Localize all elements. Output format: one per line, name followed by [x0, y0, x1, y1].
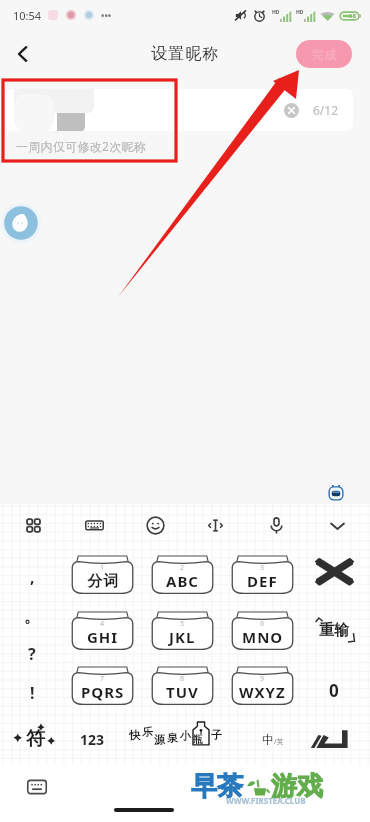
staticText: 子 [211, 728, 222, 742]
staticText: 源 [154, 733, 165, 747]
staticText: 。 [24, 607, 40, 627]
button[interactable]: 中 [248, 719, 298, 759]
button[interactable]: Clear text [281, 100, 301, 120]
staticText: 完成 [311, 47, 337, 62]
staticText: 4 [100, 619, 105, 629]
staticText: JKL [169, 627, 196, 647]
staticText: ! [30, 682, 35, 704]
button[interactable]: 8 [151, 665, 214, 705]
button[interactable]: , [10, 562, 54, 592]
staticText: 一周内仅可修改2次昵称 [16, 138, 147, 154]
staticText: 早茶 [191, 770, 243, 803]
button[interactable]: 3 [231, 554, 294, 594]
staticText: 乐 [142, 725, 153, 739]
staticText: 2 [180, 563, 185, 573]
button[interactable]: 。 [10, 602, 54, 632]
staticText: DEF [247, 571, 278, 591]
staticText: ? [28, 643, 36, 665]
staticText: 5 [180, 619, 185, 629]
staticText: 8 [180, 674, 185, 684]
staticText: ••• [101, 9, 112, 21]
staticText: GHI [87, 627, 119, 647]
button[interactable]: 123 [66, 719, 118, 759]
button[interactable]: Apps [18, 510, 48, 540]
button[interactable]: Cursor control [200, 510, 230, 540]
button[interactable]: 1 [71, 554, 134, 594]
button[interactable]: 6 [231, 610, 294, 650]
staticText: PQRS [81, 682, 125, 702]
button[interactable]: Delete [314, 551, 354, 591]
button[interactable]: Customer service [1, 203, 41, 243]
button[interactable]: Emoji [140, 510, 170, 540]
staticText: WXYZ [239, 682, 286, 702]
staticText: HD [272, 9, 280, 16]
button[interactable]: Input method [326, 483, 346, 503]
button[interactable]: 7 [71, 665, 134, 705]
button[interactable]: ? [10, 639, 54, 669]
staticText: 6/12 [313, 102, 339, 118]
button[interactable]: Clear text [5, 89, 353, 131]
staticText: 10:54 [13, 8, 42, 23]
staticText: HD [296, 9, 304, 16]
button[interactable]: 完成 [296, 40, 352, 68]
staticText: 0 [329, 679, 339, 702]
staticText: 符 [26, 727, 45, 751]
staticText: 68 [349, 12, 356, 20]
staticText: WWW.FIRSTEA.CLUB [226, 795, 306, 806]
staticText: 设置昵称 [151, 44, 220, 64]
staticText: 1 [100, 563, 105, 573]
staticText: TUV [166, 682, 199, 702]
button[interactable]: 2 [151, 554, 214, 594]
button[interactable]: 9 [231, 665, 294, 705]
staticText: 9 [260, 674, 265, 684]
staticText: 瓶 [193, 733, 203, 746]
staticText: 分词 [87, 572, 119, 591]
button[interactable]: Keyboard layout [79, 510, 109, 540]
button[interactable]: 符 [7, 717, 63, 761]
staticText: /英 [274, 737, 284, 747]
staticText: 泉 [167, 731, 178, 745]
staticText: MNO [242, 627, 284, 647]
button[interactable]: Hide keyboard [322, 510, 352, 540]
button[interactable]: 重输 [307, 610, 361, 650]
button[interactable]: 0 [316, 672, 352, 708]
staticText: 3 [260, 563, 265, 573]
button[interactable]: Back [3, 34, 43, 74]
button[interactable]: 快 [126, 717, 238, 761]
staticText: 123 [80, 730, 105, 749]
button[interactable]: Switch keyboard [25, 775, 49, 799]
staticText: 中 [262, 732, 274, 747]
staticText: 小 [180, 729, 191, 743]
button[interactable]: 5 [151, 610, 214, 650]
staticText: , [30, 566, 35, 588]
button[interactable]: Voice input [261, 510, 291, 540]
button[interactable]: 4 [71, 610, 134, 650]
button[interactable]: ! [10, 678, 54, 708]
staticText: 快 [129, 728, 140, 742]
staticText: 重输 [319, 621, 349, 640]
staticText: 游戏 [271, 770, 323, 803]
staticText: ABC [166, 571, 199, 591]
staticText: 6 [260, 619, 265, 629]
button[interactable]: Enter [302, 719, 358, 759]
staticText: 7 [100, 674, 105, 684]
